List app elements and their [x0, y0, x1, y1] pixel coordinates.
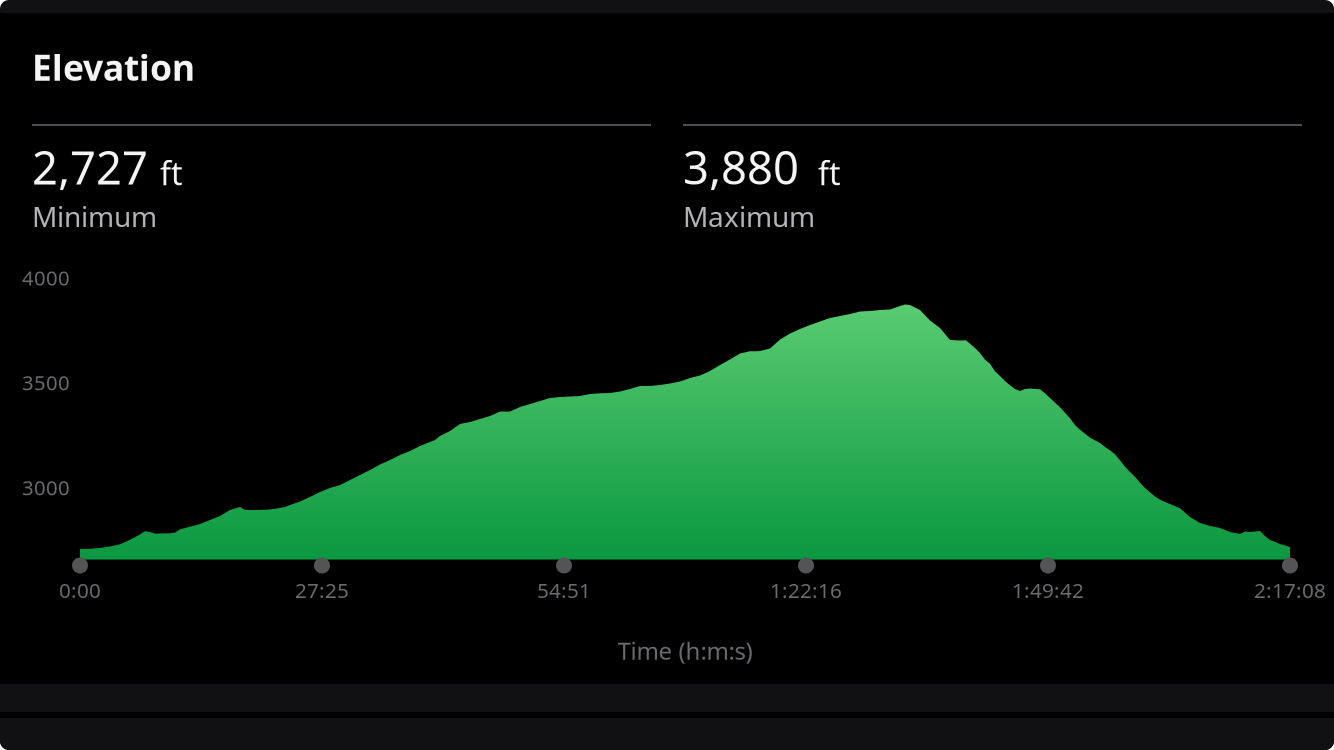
staticText: Maximum — [683, 197, 815, 235]
staticText: ft — [818, 151, 841, 195]
staticText: ft — [160, 151, 183, 195]
staticText: 3500 — [22, 368, 70, 396]
staticText: 27:25 — [295, 576, 349, 604]
staticText: 2:17:08 — [1254, 576, 1326, 604]
staticText: 3000 — [22, 473, 70, 501]
staticText: Elevation — [32, 43, 195, 91]
staticText: 3,880 — [683, 136, 799, 198]
staticText: 4000 — [22, 264, 70, 291]
staticText: 0:00 — [59, 576, 101, 604]
staticText: 1:49:42 — [1012, 576, 1084, 604]
staticText: Time (h:m:s) — [617, 634, 752, 667]
staticText: 2,727 — [32, 136, 148, 198]
staticText: Minimum — [32, 197, 157, 235]
staticText: 54:51 — [537, 576, 591, 604]
staticText: 1:22:16 — [770, 576, 842, 604]
